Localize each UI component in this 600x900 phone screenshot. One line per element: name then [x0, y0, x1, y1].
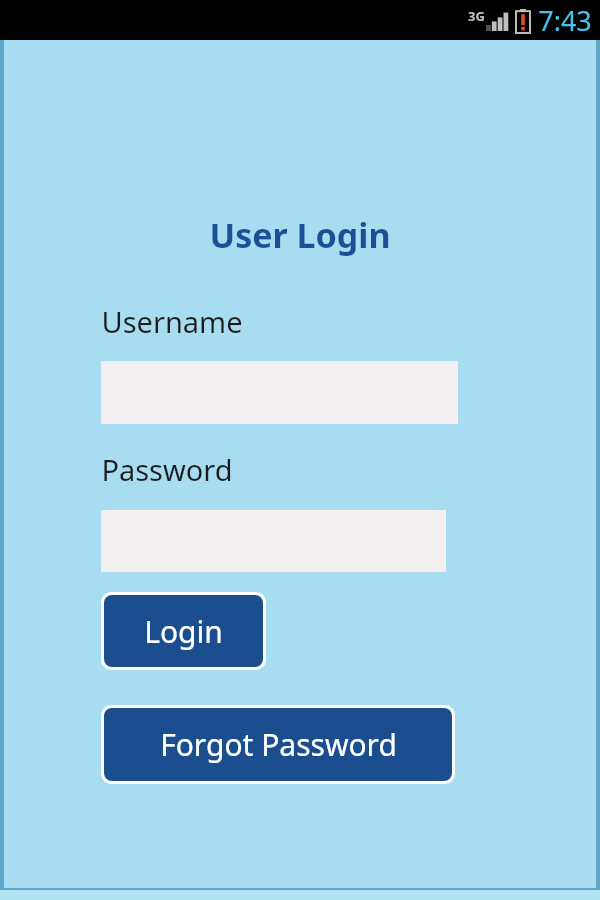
staticText: User Login — [209, 212, 391, 258]
button[interactable]: Forgot Password — [104, 708, 452, 781]
staticText: 3G — [468, 7, 485, 25]
staticText: Login — [144, 611, 223, 652]
staticText: Password — [101, 450, 233, 489]
staticText: Username — [101, 302, 243, 341]
button[interactable]: Login — [104, 595, 263, 667]
staticText: Forgot Password — [160, 724, 397, 765]
staticText: 7:43 — [538, 2, 592, 39]
